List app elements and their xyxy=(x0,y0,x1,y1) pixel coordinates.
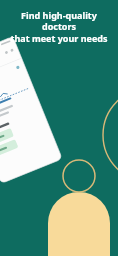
button[interactable]: Find high-quality doctors that meet your… xyxy=(6,9,112,45)
